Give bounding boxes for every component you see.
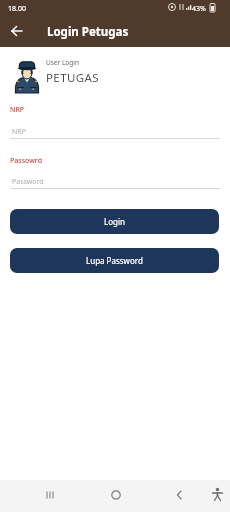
staticText: Lupa Password bbox=[86, 255, 143, 266]
button[interactable] bbox=[206, 483, 228, 505]
button[interactable] bbox=[104, 484, 128, 508]
button[interactable]: NRP bbox=[10, 118, 220, 139]
staticText: Login Petugas bbox=[47, 24, 129, 40]
staticText: NRP bbox=[12, 127, 26, 137]
staticText: Password bbox=[12, 177, 44, 187]
button[interactable] bbox=[6, 20, 28, 42]
button[interactable] bbox=[38, 484, 62, 508]
staticText: 18.00 bbox=[8, 4, 26, 14]
button[interactable] bbox=[167, 484, 191, 508]
staticText: Passowrd bbox=[10, 156, 43, 166]
staticText: PETUGAS bbox=[46, 70, 99, 86]
staticText: User Login bbox=[46, 58, 79, 67]
staticText: 43% bbox=[192, 4, 206, 14]
button[interactable]: Login bbox=[10, 209, 219, 234]
button[interactable]: Password bbox=[10, 168, 220, 189]
button[interactable]: Lupa Password bbox=[10, 248, 219, 273]
staticText: Login bbox=[104, 216, 125, 227]
staticText: NRP bbox=[10, 105, 25, 115]
